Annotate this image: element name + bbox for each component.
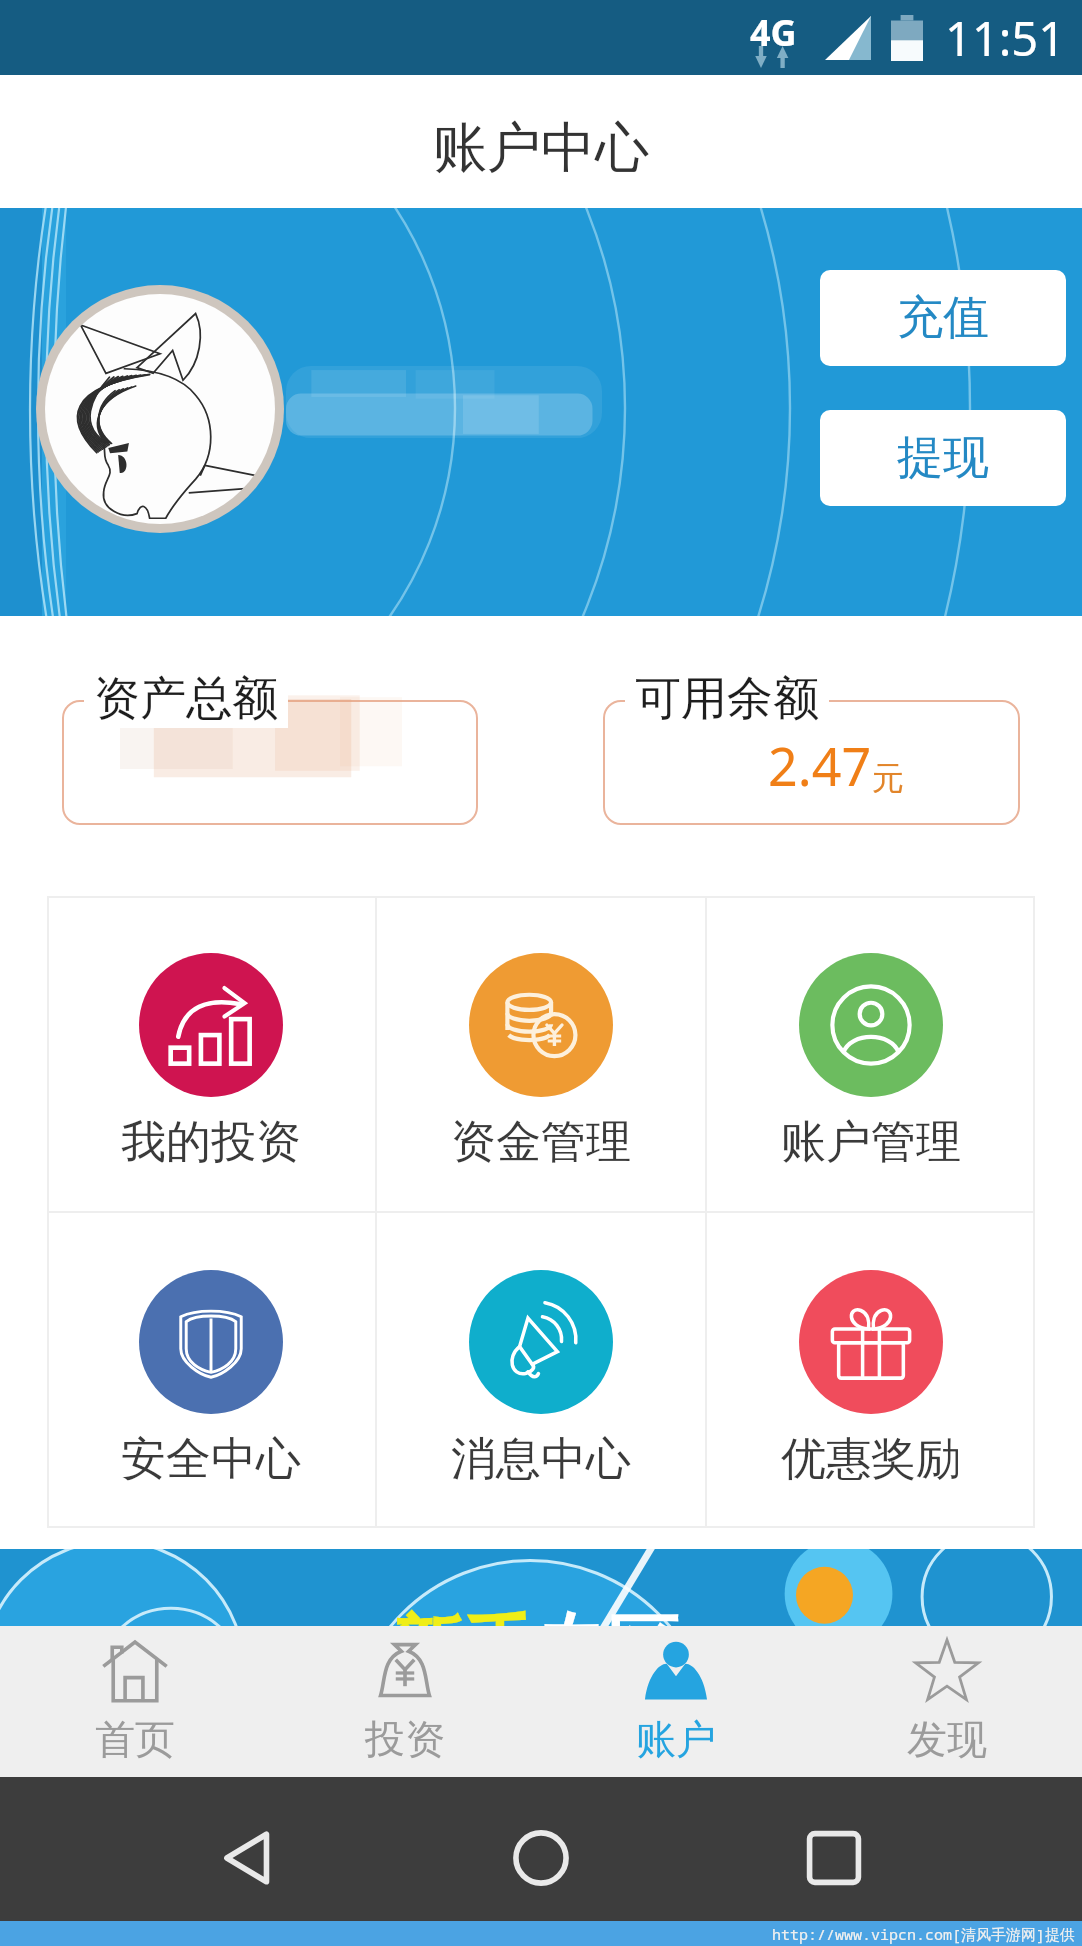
button[interactable]: 提现 <box>820 410 1066 506</box>
button[interactable]: 首页 <box>0 1626 270 1777</box>
button[interactable]: 账户 <box>540 1626 811 1777</box>
button[interactable]: 安全中心 <box>47 1213 375 1528</box>
staticText: 账户管理 <box>781 1114 961 1171</box>
staticText: 优惠奖励 <box>781 1431 961 1488</box>
button[interactable]: 消息中心 <box>377 1213 705 1528</box>
staticText: 4G <box>750 8 797 57</box>
staticText: 2.47 <box>768 730 872 801</box>
staticText: 提现 <box>897 429 989 487</box>
staticText: 安全中心 <box>121 1431 301 1488</box>
button[interactable]: Home <box>508 1825 574 1891</box>
staticText: 11:51 <box>945 6 1066 70</box>
button[interactable]: 优惠奖励 <box>707 1213 1035 1528</box>
staticText: 可用余额 <box>635 670 819 728</box>
button[interactable]: 可用余额 <box>603 670 1020 825</box>
staticText: 我的投资 <box>121 1114 301 1171</box>
button[interactable]: 资产总额 <box>62 670 478 825</box>
button[interactable]: 账户管理 <box>707 896 1035 1211</box>
staticText: 元 <box>872 758 904 798</box>
staticText: 发现 <box>907 1714 987 1764</box>
button[interactable]: 投资 <box>270 1626 540 1777</box>
staticText: 账户中心 <box>433 114 649 182</box>
staticText: 资产总额 <box>94 670 278 728</box>
staticText: http://www.vipcn.com[清风手游网]提供 <box>772 1924 1076 1944</box>
staticText: 新手 <box>391 1605 535 1626</box>
button[interactable]: Back <box>215 1825 281 1891</box>
staticText: 专区 <box>535 1605 679 1626</box>
staticText: 资金管理 <box>451 1114 631 1171</box>
button[interactable]: 我的投资 <box>47 896 375 1211</box>
button[interactable]: Avatar <box>36 285 284 533</box>
staticText: 账户 <box>636 1714 716 1764</box>
staticText: 投资 <box>365 1714 445 1764</box>
button[interactable]: 发现 <box>811 1626 1082 1777</box>
staticText: 首页 <box>95 1714 175 1764</box>
button[interactable]: Recents <box>801 1825 867 1891</box>
button[interactable]: 账户中心 <box>0 75 1082 208</box>
staticText: 充值 <box>897 289 989 347</box>
button[interactable]: 充值 <box>820 270 1066 366</box>
button[interactable]: 资金管理 <box>377 896 705 1211</box>
staticText: 消息中心 <box>451 1431 631 1488</box>
